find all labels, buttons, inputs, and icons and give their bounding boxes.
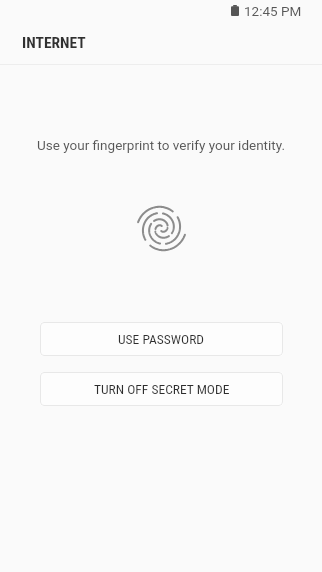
button[interactable]: TURN OFF SECRET MODE (40, 372, 283, 406)
button[interactable]: USE PASSWORD (40, 322, 283, 356)
other: Fingerprint sensor (136, 203, 187, 254)
staticText: INTERNET (22, 34, 86, 52)
staticText: 12:45 PM (244, 3, 302, 19)
staticText: USE PASSWORD (118, 331, 205, 347)
staticText: Use your fingerprint to verify your iden… (0, 137, 322, 153)
staticText: TURN OFF SECRET MODE (94, 381, 230, 397)
other: Battery full (231, 5, 239, 16)
